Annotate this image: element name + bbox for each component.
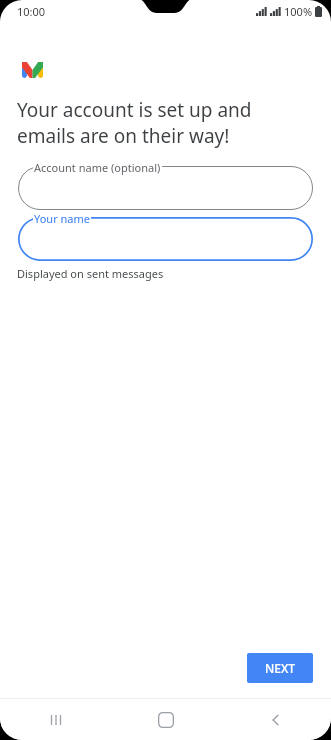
staticText: Your account is set up and emails are on… [17,97,252,149]
staticText: Account name (optional) [34,160,161,175]
staticText: 100% [284,4,313,19]
staticText: Your name [34,211,90,226]
button[interactable]: Home [111,699,221,740]
staticText: 10:00 [17,4,46,19]
button[interactable]: Back [221,699,331,740]
button[interactable]: Your name [18,217,313,261]
button[interactable]: Recent apps [0,699,111,740]
staticText: Displayed on sent messages [17,266,164,281]
button[interactable]: NEXT [247,653,313,683]
button[interactable]: Account name (optional) [18,166,313,210]
staticText: NEXT [265,660,296,676]
